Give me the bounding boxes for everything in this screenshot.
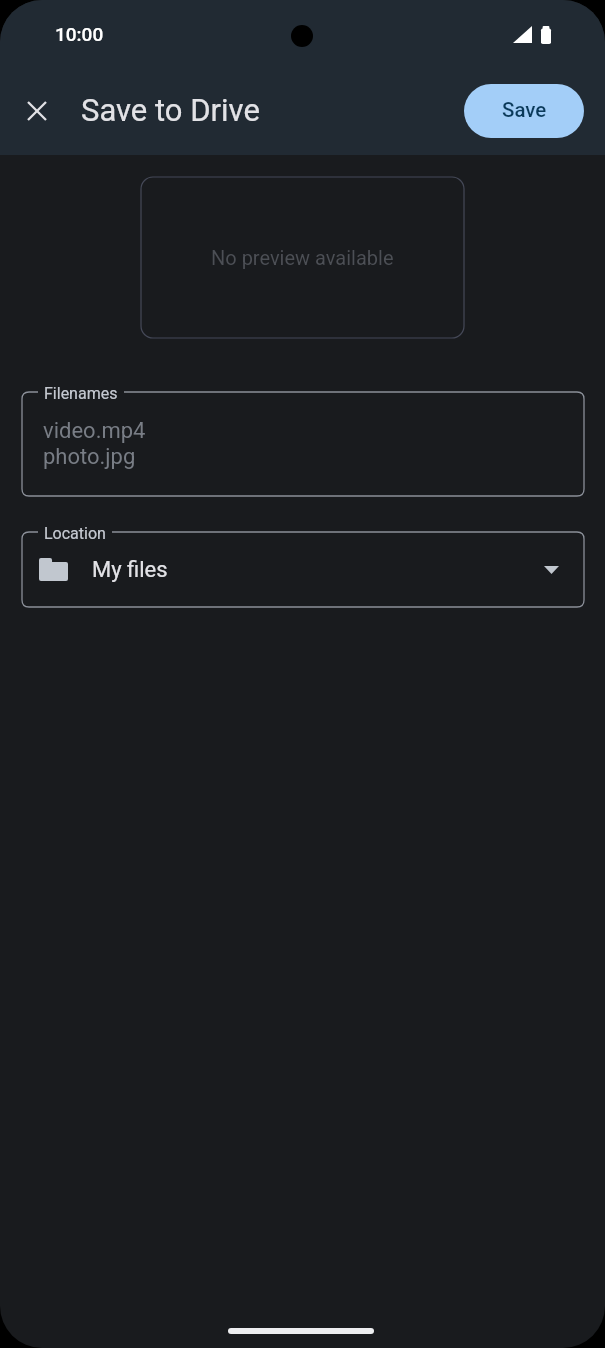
staticText: 10:00 (55, 23, 104, 45)
button[interactable]: Save (464, 84, 584, 138)
staticText: No preview available (211, 246, 394, 269)
staticText: Save to Drive (81, 92, 260, 128)
staticText: video.mp4 (43, 418, 146, 444)
staticText: photo.jpg (43, 444, 136, 470)
staticText: Save (502, 98, 547, 122)
staticText: My files (92, 557, 168, 583)
button[interactable]: Close (13, 87, 61, 135)
staticText: Filenames (44, 384, 118, 403)
button[interactable]: Location, My files (22, 532, 584, 607)
button[interactable]: Filenames (22, 392, 584, 496)
staticText: Location (44, 524, 106, 543)
